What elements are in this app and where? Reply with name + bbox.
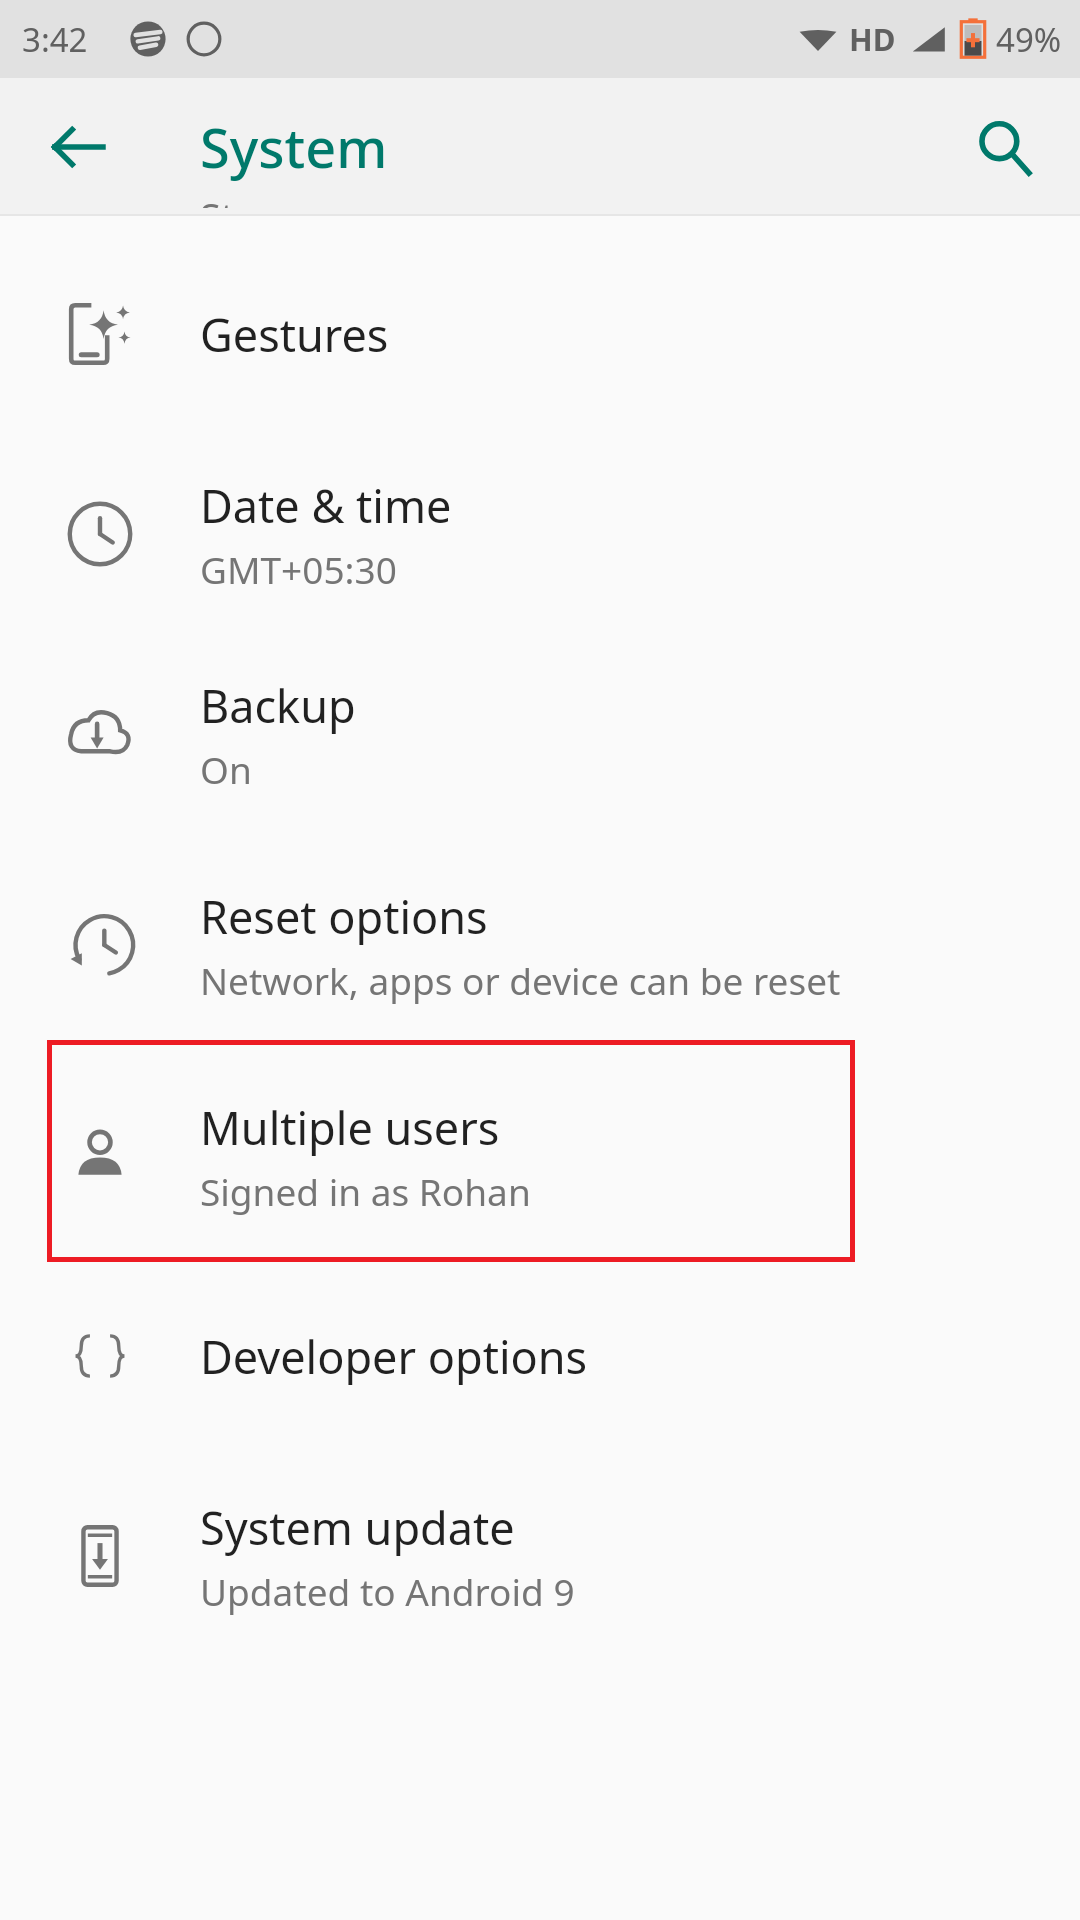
button[interactable]: Search <box>952 95 1056 199</box>
staticText: Network, apps or device can be reset <box>200 955 841 1005</box>
staticText: Developer options <box>200 1326 588 1387</box>
staticText: Updated to Android 9 <box>200 1566 575 1616</box>
staticText: Date & time <box>200 475 452 536</box>
staticText: Reset options <box>200 886 488 947</box>
staticText: Signed in as Rohan <box>200 1166 531 1216</box>
staticText: 49% <box>996 17 1062 62</box>
staticText: HD <box>849 18 896 60</box>
staticText: GMT+05:30 <box>200 544 397 594</box>
staticText: Storage <box>200 190 339 208</box>
button[interactable]: Backup <box>0 634 1080 834</box>
staticText: On <box>200 744 252 794</box>
button[interactable]: Back <box>26 95 130 199</box>
button[interactable]: System update <box>0 1456 1080 1656</box>
staticText: Gestures <box>200 304 389 365</box>
button[interactable]: Gestures <box>0 234 1080 434</box>
button[interactable]: Developer options <box>0 1256 1080 1456</box>
staticText: System update <box>200 1497 515 1558</box>
staticText: Multiple users <box>200 1097 500 1158</box>
button[interactable]: Reset options <box>0 834 1080 1056</box>
staticText: System <box>200 110 388 184</box>
button[interactable]: Date & time <box>0 434 1080 634</box>
button[interactable]: Multiple users <box>0 1056 1080 1256</box>
staticText: 3:42 <box>22 17 88 62</box>
staticText: Backup <box>200 675 356 736</box>
